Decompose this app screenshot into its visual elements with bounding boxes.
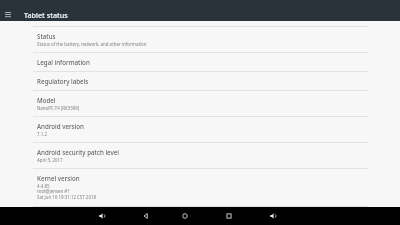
staticText: April 5, 2017 [37, 157, 63, 163]
button[interactable]: Android security patch level [0, 143, 400, 168]
staticText: Tablet status [24, 10, 68, 20]
button[interactable]: Recent apps [220, 207, 238, 225]
button[interactable]: Model [0, 91, 400, 116]
button[interactable]: Regulatory labels [0, 72, 400, 90]
staticText: Regulatory labels [37, 77, 89, 85]
staticText: 4.4.85 root@jensen #1 Sat Jun 16 19:31:1… [37, 183, 96, 201]
staticText: Android version [37, 122, 84, 130]
staticText: Status of the battery, network, and othe… [37, 41, 147, 47]
staticText: Legal information [37, 58, 90, 66]
button[interactable]: Kernel version [0, 169, 400, 206]
button[interactable]: Back [137, 207, 155, 225]
button[interactable]: Status [0, 27, 400, 52]
button[interactable]: Volume up [264, 207, 282, 225]
button[interactable]: Volume down [93, 207, 111, 225]
button[interactable]: Home [176, 207, 194, 225]
button[interactable]: Legal information [0, 53, 400, 71]
staticText: Model [37, 96, 56, 104]
staticText: Status [37, 32, 56, 40]
staticText: 7.1.2 [37, 131, 47, 137]
staticText: Kernel version [37, 174, 80, 182]
staticText: NanoPC-T4 (RK3399) [37, 105, 80, 111]
button[interactable]: Open navigation drawer [0, 9, 16, 21]
button[interactable]: Android version [0, 117, 400, 142]
staticText: Android security patch level [37, 148, 120, 156]
